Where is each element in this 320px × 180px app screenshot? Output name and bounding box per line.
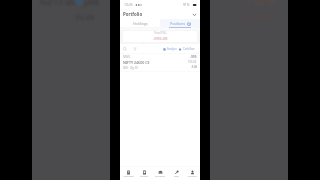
staticText: Bids	[174, 174, 179, 177]
staticText: Cashflow	[183, 47, 195, 51]
staticText: Analyse	[167, 47, 177, 51]
button[interactable]: Search	[121, 45, 129, 53]
button[interactable]: Watchlist	[120, 167, 136, 180]
staticText: 105.00	[188, 60, 197, 64]
staticText: Orders	[140, 174, 148, 177]
staticText: NSE · Qty 50	[123, 66, 138, 70]
staticText: Portfolio	[155, 174, 165, 177]
staticText: 2	[188, 22, 190, 26]
button[interactable]: NRML	[120, 53, 200, 72]
button[interactable]: Filter	[131, 45, 139, 53]
staticText: -995	[190, 55, 197, 59]
staticText: Positions	[170, 21, 186, 26]
button[interactable]: Account	[184, 167, 200, 180]
staticText: -995.00	[153, 36, 168, 42]
button[interactable]: Analyse	[163, 46, 177, 52]
button[interactable]: Cashflow	[179, 46, 195, 52]
staticText: 10:45	[124, 2, 133, 7]
button[interactable]: Expand account	[190, 10, 198, 18]
button[interactable]: Portfolio	[152, 167, 168, 180]
staticText: -9.46	[191, 65, 197, 69]
staticText: Total P&L	[154, 31, 167, 35]
staticText: Watchlist	[123, 174, 134, 177]
button[interactable]: Bids	[168, 167, 184, 180]
button[interactable]: Holdings	[120, 19, 160, 27]
button[interactable]: Positions	[160, 19, 200, 27]
staticText: Portfolio	[123, 11, 143, 17]
staticText: Holdings	[133, 21, 148, 26]
staticText: Account	[187, 174, 197, 177]
staticText: 91%	[183, 3, 190, 7]
staticText: NRML	[123, 55, 131, 59]
button[interactable]: Orders	[136, 167, 152, 180]
staticText: NIFTY 24600 CE	[123, 60, 150, 65]
